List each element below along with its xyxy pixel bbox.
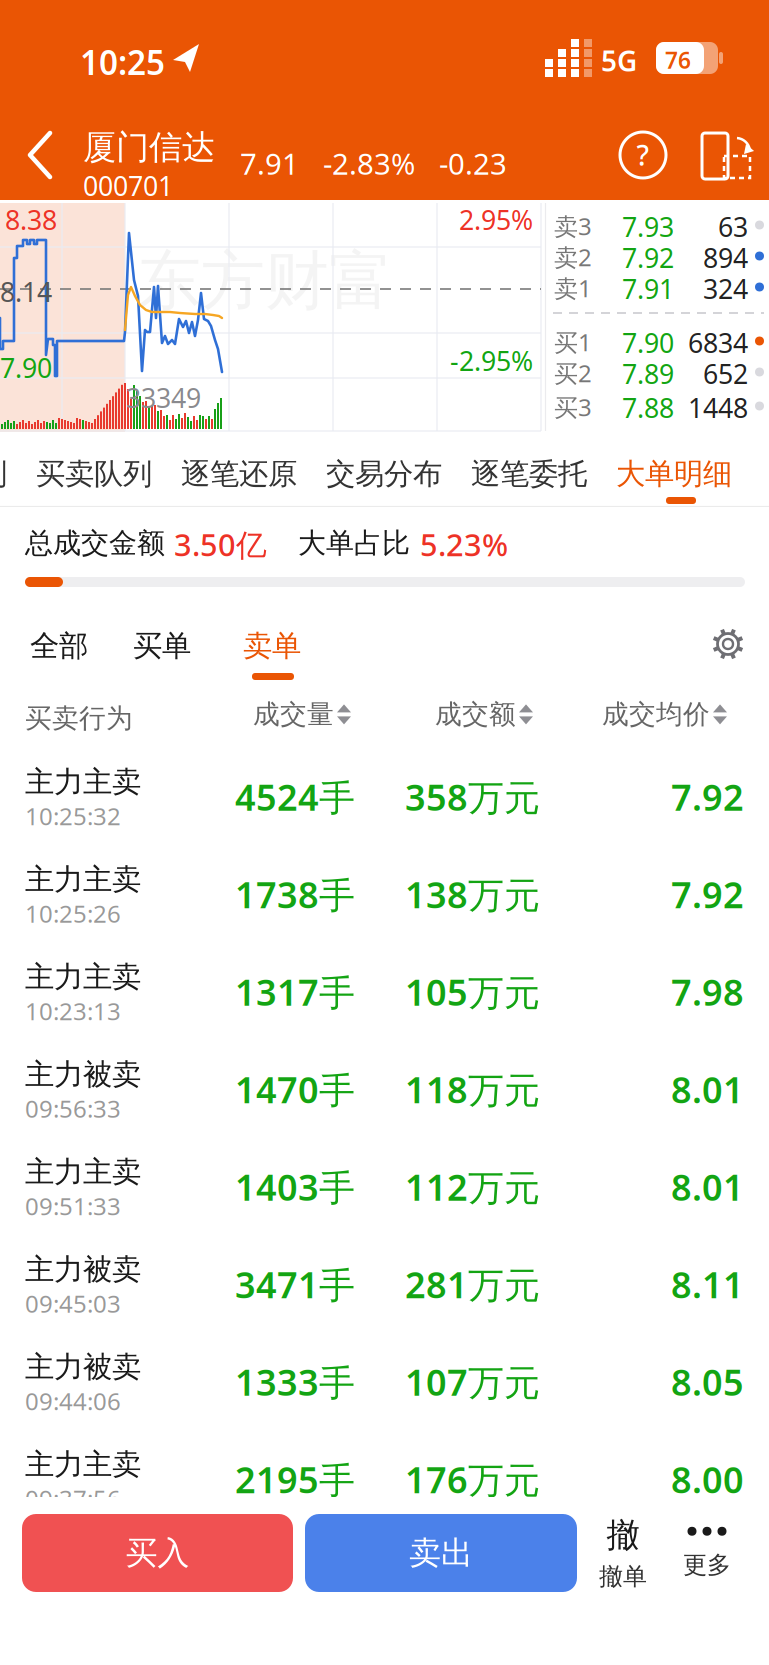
staticText: 成交额 — [435, 698, 516, 731]
button[interactable]: 卖单 — [243, 628, 301, 664]
staticText: 7.98 — [671, 968, 744, 1016]
staticText: 主力被卖 — [25, 1349, 141, 1385]
staticText: 894 — [703, 240, 748, 275]
staticText: 107万元 — [405, 1358, 540, 1406]
staticText: 3.50亿 — [174, 524, 267, 565]
staticText: 主力主卖 — [25, 959, 141, 995]
button[interactable]: 全部 — [30, 628, 88, 664]
button[interactable]: 成交均价 — [602, 698, 727, 731]
staticText: 买2 — [554, 357, 592, 389]
staticText: 112万元 — [405, 1163, 540, 1211]
staticText: 8.01 — [671, 1065, 744, 1113]
button[interactable]: 撤 — [588, 1511, 658, 1595]
staticText: 118万元 — [405, 1065, 540, 1113]
staticText: 成交均价 — [602, 698, 710, 731]
staticText: 358万元 — [405, 773, 540, 821]
staticText: 成交量 — [253, 698, 334, 731]
staticText: 8.05 — [671, 1358, 744, 1406]
staticText: 324 — [703, 271, 748, 306]
staticText: 3471手 — [235, 1260, 355, 1308]
staticText: 买入 — [125, 1533, 189, 1573]
staticText: 8.01 — [671, 1163, 744, 1211]
staticText: 买1 — [554, 326, 592, 358]
staticText: 1403手 — [235, 1163, 355, 1211]
staticText: 7.91 — [622, 271, 674, 306]
staticText: 4524手 — [235, 773, 355, 821]
staticText: 主力主卖 — [25, 861, 141, 897]
staticText: 2195手 — [235, 1455, 355, 1503]
button[interactable]: 帮助 — [620, 132, 666, 178]
button[interactable]: 返回 — [12, 125, 68, 185]
button[interactable]: 更多 — [672, 1511, 742, 1595]
button[interactable]: 买卖队列 — [36, 456, 152, 492]
staticText: 厦门信达 — [83, 127, 215, 168]
staticText: 105万元 — [405, 968, 540, 1016]
button[interactable]: 卖出 — [305, 1514, 577, 1592]
button[interactable]: 交易分布 — [326, 456, 442, 492]
staticText: 6834 — [688, 325, 748, 360]
staticText: 主力被卖 — [25, 1251, 141, 1287]
button[interactable]: 横屏 — [700, 130, 760, 182]
staticText: 1738手 — [235, 870, 355, 918]
staticText: 2.95% — [459, 202, 533, 237]
staticText: 7.90 — [622, 325, 674, 360]
staticText: 7.93 — [622, 209, 674, 244]
staticText: 主力主卖 — [25, 764, 141, 800]
staticText: 撤单 — [599, 1562, 647, 1591]
staticText: 1333手 — [235, 1358, 355, 1406]
button[interactable]: 买入 — [22, 1514, 293, 1592]
staticText: 主力主卖 — [25, 1154, 141, 1190]
button[interactable]: 大单明细 — [616, 456, 732, 492]
staticText: 卖1 — [554, 272, 592, 304]
staticText: 10:25 — [80, 40, 165, 84]
staticText: 交易分布 — [326, 456, 442, 492]
staticText: 列 — [0, 456, 7, 492]
button[interactable]: 成交量 — [253, 698, 351, 731]
staticText: 7.89 — [622, 356, 674, 391]
button[interactable]: 成交额 — [435, 698, 533, 731]
staticText: -2.95% — [450, 343, 533, 378]
staticText: 全部 — [30, 628, 88, 664]
staticText: 7.92 — [622, 240, 674, 275]
button[interactable]: 逐笔还原 — [181, 456, 297, 492]
staticText: 09:56:33 — [25, 1092, 121, 1124]
staticText: 8.38 — [5, 202, 57, 237]
button[interactable]: 逐笔委托 — [471, 456, 587, 492]
staticText: 5G — [601, 42, 637, 79]
staticText: 买3 — [554, 391, 592, 423]
staticText: 7.92 — [671, 870, 744, 918]
staticText: 652 — [703, 356, 748, 391]
staticText: 09:44:06 — [25, 1385, 121, 1417]
staticText: 33349 — [126, 380, 201, 415]
staticText: 8.11 — [671, 1260, 744, 1308]
staticText: 10:23:13 — [25, 995, 121, 1027]
staticText: 09:51:33 — [25, 1190, 121, 1222]
staticText: 卖单 — [243, 628, 301, 664]
staticText: 7.92 — [671, 773, 744, 821]
staticText: 逐笔委托 — [471, 456, 587, 492]
staticText: 09:45:03 — [25, 1287, 121, 1319]
staticText: 76 — [665, 45, 691, 75]
staticText: 7.90 — [0, 350, 52, 385]
staticText: 买卖行为 — [25, 702, 133, 735]
button[interactable]: 设置 — [706, 622, 750, 666]
staticText: 7.91 -2.83% -0.23 — [240, 144, 507, 183]
staticText: 主力被卖 — [25, 1056, 141, 1092]
staticText: 1470手 — [235, 1065, 355, 1113]
staticText: 8.14 — [0, 274, 52, 309]
staticText: 1317手 — [235, 968, 355, 1016]
staticText: 总成交金额 — [25, 526, 165, 560]
staticText: 63 — [718, 209, 748, 244]
button[interactable]: 买单 — [133, 628, 191, 664]
staticText: 卖3 — [554, 210, 592, 242]
staticText: 281万元 — [405, 1260, 540, 1308]
staticText: 8.00 — [671, 1455, 744, 1503]
staticText: 000701 — [83, 168, 173, 203]
staticText: 7.88 — [622, 390, 674, 425]
staticText: 176万元 — [405, 1455, 540, 1503]
staticText: 卖2 — [554, 241, 592, 273]
staticText: 10:25:26 — [25, 897, 121, 929]
staticText: 更多 — [683, 1550, 731, 1580]
staticText: 138万元 — [405, 870, 540, 918]
staticText: 10:25:32 — [25, 800, 121, 832]
